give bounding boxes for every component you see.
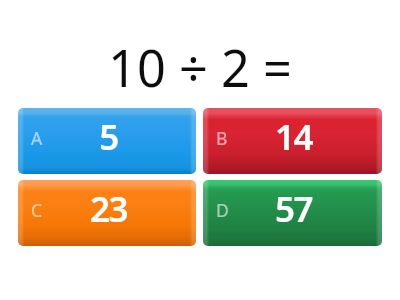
button[interactable]: Answer C: 23 — [18, 180, 196, 246]
staticText: 23 — [90, 185, 127, 233]
staticText: C — [31, 198, 43, 222]
button[interactable]: Answer D: 57 — [203, 180, 382, 246]
staticText: 57 — [275, 185, 312, 233]
staticText: 14 — [275, 113, 312, 161]
staticText: A — [31, 126, 43, 150]
staticText: D — [216, 198, 229, 222]
button[interactable]: Answer B: 14 — [203, 108, 382, 174]
staticText: 10 ÷ 2 = — [108, 33, 292, 102]
button[interactable]: Answer A: 5 — [18, 108, 196, 174]
staticText: B — [216, 126, 228, 150]
staticText: 5 — [99, 113, 118, 161]
